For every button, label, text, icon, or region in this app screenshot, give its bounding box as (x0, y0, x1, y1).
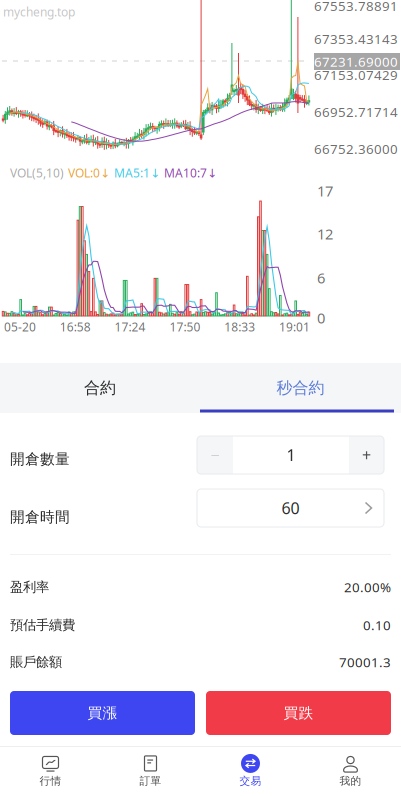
staticText: 16:58 (60, 319, 91, 335)
staticText: 18:33 (224, 319, 255, 335)
staticText: 66752.36000 (314, 140, 398, 158)
staticText: 1 (286, 444, 295, 466)
staticText: 0.10 (363, 616, 391, 634)
staticText: 17 (317, 181, 333, 200)
staticText: 預估手續費 (10, 617, 75, 633)
staticText: 我的 (339, 774, 361, 787)
staticText: 賬戶餘額 (10, 654, 62, 670)
staticText: 20.00% (344, 578, 391, 596)
staticText: 0 (317, 308, 325, 327)
staticText: 67153.07429 (314, 66, 398, 84)
staticText: 66952.71714 (314, 103, 398, 121)
staticText: 19:01 (279, 319, 310, 335)
button[interactable]: 60 (197, 489, 384, 527)
staticText: 12 (317, 224, 333, 243)
staticText: 開倉數量 (10, 450, 70, 468)
staticText: 70001.3 (339, 653, 391, 671)
staticText: 67553.78891 (314, 0, 398, 15)
button[interactable]: 行情 (0, 747, 100, 795)
staticText: mycheng.top (3, 4, 75, 20)
button[interactable]: 我的 (300, 747, 400, 795)
button[interactable]: 交易 (200, 747, 300, 795)
staticText: − (210, 444, 219, 466)
staticText: 盈利率 (10, 579, 49, 595)
staticText: 秒合約 (276, 378, 324, 398)
button[interactable]: 買漲 (10, 691, 195, 735)
staticText: 05-20 (4, 319, 36, 335)
staticText: 6 (317, 268, 325, 287)
staticText: 開倉時間 (10, 508, 70, 526)
staticText: 17:50 (169, 319, 200, 335)
staticText: 訂單 (139, 774, 161, 787)
button[interactable]: 訂單 (100, 747, 200, 795)
staticText: VOL(5,10) (10, 165, 64, 181)
staticText: 行情 (39, 774, 61, 787)
staticText: 67231.69000 (314, 53, 398, 70)
staticText: MA5:1↓ (114, 165, 160, 181)
staticText: 買跌 (283, 704, 313, 722)
button[interactable]: 秒合約 (200, 362, 401, 413)
staticText: MA10:7↓ (164, 165, 217, 181)
button[interactable]: 合約 (0, 363, 200, 413)
staticText: 交易 (239, 774, 261, 787)
button[interactable]: + (349, 436, 384, 474)
staticText: 買漲 (87, 704, 117, 722)
staticText: 60 (281, 497, 299, 519)
button[interactable]: − (197, 436, 233, 474)
staticText: 17:24 (115, 319, 146, 335)
staticText: 合約 (84, 378, 116, 398)
staticText: VOL:0↓ (68, 165, 110, 181)
staticText: + (362, 444, 371, 466)
staticText: 67353.43143 (314, 30, 398, 48)
button[interactable]: 買跌 (206, 691, 391, 735)
